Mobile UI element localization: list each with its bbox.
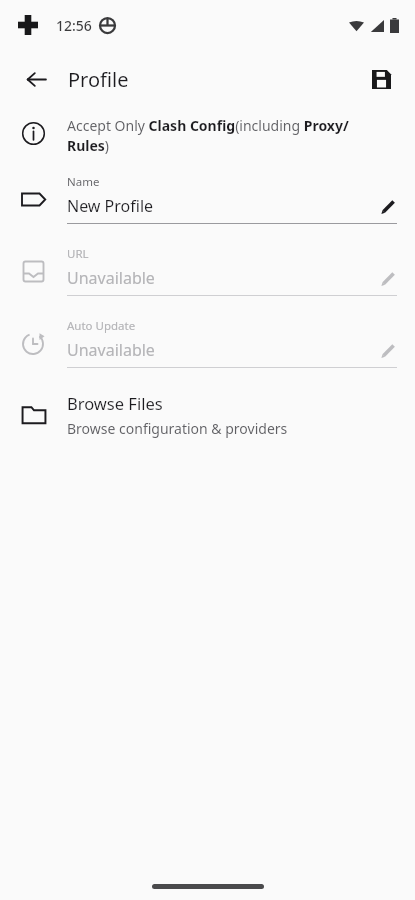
staticText: Unavailable	[67, 339, 155, 361]
button[interactable]: URL	[0, 246, 415, 296]
button[interactable]: Auto Update	[0, 318, 415, 368]
staticText: Browse Files	[67, 392, 163, 414]
button[interactable]: Browse Files	[0, 392, 415, 438]
staticText: 12:56	[56, 16, 92, 35]
staticText: URL	[67, 246, 89, 262]
staticText: Name	[67, 174, 100, 190]
button[interactable]: Name	[0, 174, 415, 224]
button[interactable]: Save	[359, 57, 403, 101]
staticText: Unavailable	[67, 267, 155, 289]
staticText: Auto Update	[67, 318, 136, 334]
staticText: New Profile	[67, 195, 154, 217]
button[interactable]: Accept Only Clash Config(including Proxy…	[0, 116, 415, 156]
staticText: Browse configuration & providers	[67, 419, 288, 438]
staticText: Accept Only Clash Config(including Proxy…	[67, 116, 375, 156]
button[interactable]: Back	[14, 57, 58, 101]
staticText: Profile	[68, 66, 129, 93]
